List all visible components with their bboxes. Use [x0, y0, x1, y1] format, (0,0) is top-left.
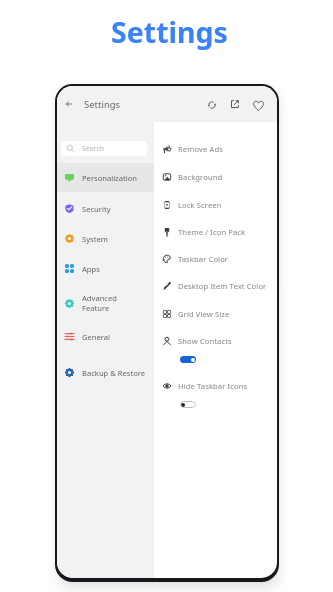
staticText: Desktop Item Text Color — [178, 281, 267, 291]
button[interactable]: Refresh — [205, 98, 219, 112]
button[interactable]: System — [57, 224, 154, 253]
button[interactable]: Switch off — [180, 401, 196, 408]
button[interactable]: Backup & Restore — [57, 358, 154, 387]
staticText: Hide Taskbar Icons — [178, 381, 248, 391]
staticText: General — [82, 332, 110, 342]
button[interactable]: Grid View Size — [154, 301, 277, 327]
staticText: Apps — [82, 264, 100, 274]
button[interactable]: Desktop Item Text Color — [154, 273, 277, 299]
button[interactable]: Hide Taskbar Icons — [154, 373, 277, 399]
button[interactable]: General — [57, 322, 154, 351]
staticText: Settings — [84, 98, 121, 111]
button[interactable]: Personalization — [57, 163, 154, 192]
button[interactable]: Lock Screen — [154, 192, 277, 218]
staticText: Backup & Restore — [82, 368, 146, 378]
staticText: Security — [82, 204, 111, 214]
button[interactable]: Share — [228, 97, 242, 111]
staticText: Grid View Size — [178, 309, 230, 319]
button[interactable]: Taskbar Color — [154, 246, 277, 272]
staticText: Remove Ads — [178, 144, 223, 154]
button[interactable]: Favorite — [250, 97, 267, 114]
button[interactable]: Apps — [57, 254, 154, 283]
button[interactable]: Back — [60, 95, 78, 113]
staticText: Background — [178, 172, 223, 182]
staticText: Show Contacts — [178, 336, 232, 346]
button[interactable]: Search — [61, 141, 147, 156]
button[interactable]: Remove Ads — [154, 136, 277, 162]
staticText: Taskbar Color — [178, 254, 229, 264]
staticText: Settings — [3, 13, 333, 52]
button[interactable]: Show Contacts — [154, 328, 277, 354]
button[interactable]: Background — [154, 164, 277, 190]
staticText: Search — [82, 144, 105, 154]
staticText: Lock Screen — [178, 200, 222, 210]
button[interactable]: Theme / Icon Pack — [154, 219, 277, 245]
button[interactable]: Security — [57, 194, 154, 223]
staticText: Personalization — [82, 173, 137, 183]
staticText: Theme / Icon Pack — [178, 227, 246, 237]
staticText: System — [82, 234, 108, 244]
staticText: Advanced Feature — [82, 293, 117, 313]
button[interactable]: Switch on — [180, 356, 196, 363]
button[interactable]: Advanced Feature — [57, 283, 154, 323]
